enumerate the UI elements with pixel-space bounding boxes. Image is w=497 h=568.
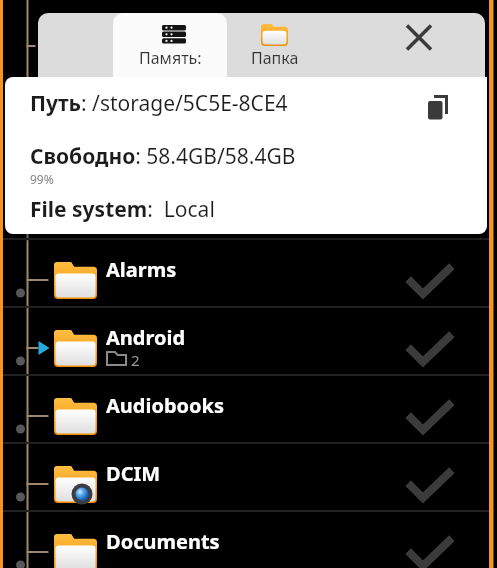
staticText: Android xyxy=(106,324,186,351)
button[interactable] xyxy=(413,85,463,129)
staticText: 99% xyxy=(30,171,54,187)
button[interactable]: Android xyxy=(3,308,489,374)
staticText: Папка xyxy=(251,47,299,69)
staticText: Alarms xyxy=(106,256,177,283)
staticText: Documents xyxy=(106,528,220,555)
staticText: Память: xyxy=(139,47,202,69)
staticText: DCIM xyxy=(106,460,161,487)
button[interactable] xyxy=(390,13,454,68)
staticText: 2 xyxy=(131,350,140,370)
button[interactable]: Папка xyxy=(235,13,315,77)
button[interactable]: Documents xyxy=(3,512,489,568)
button[interactable]: DCIM xyxy=(3,444,489,510)
button[interactable]: Alarms xyxy=(3,240,489,306)
staticText: Свободно: 58.4GB/58.4GB xyxy=(30,142,296,171)
button[interactable]: Audiobooks xyxy=(3,376,489,442)
staticText: Audiobooks xyxy=(106,392,225,419)
button[interactable]: Память: xyxy=(113,13,227,77)
staticText: File system: Local xyxy=(30,195,215,224)
staticText: Путь: /storage/5C5E-8CE4 xyxy=(30,89,288,118)
